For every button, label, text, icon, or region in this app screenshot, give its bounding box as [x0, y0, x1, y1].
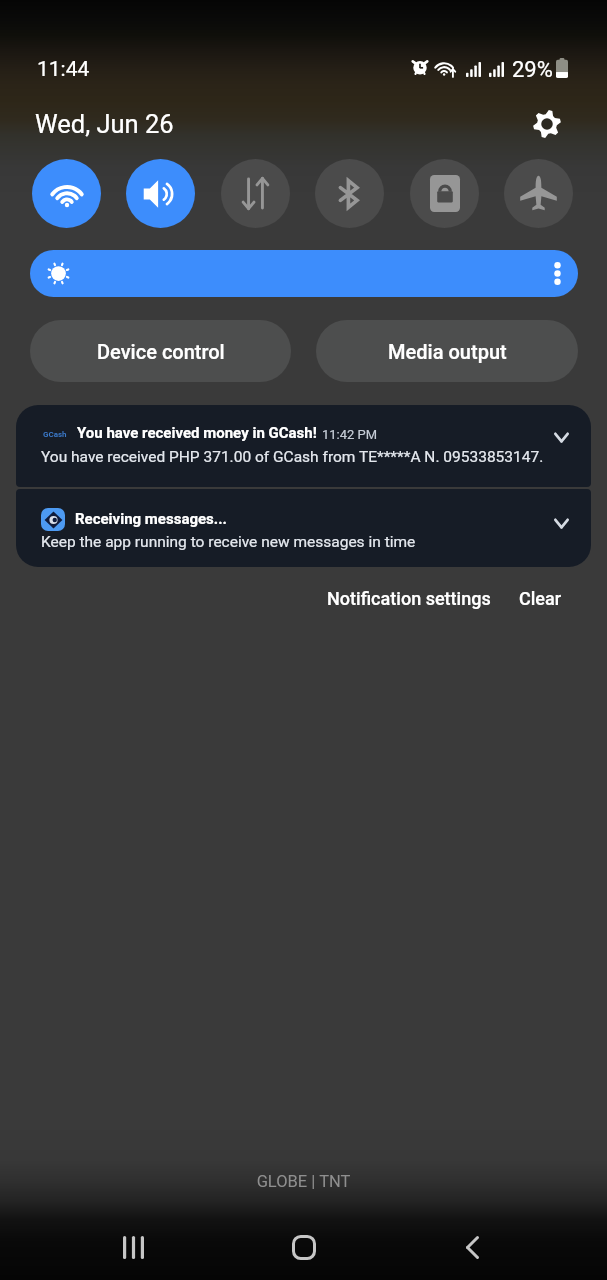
- button[interactable]: Notification settings: [320, 579, 498, 618]
- button[interactable]: Bluetooth: [315, 159, 384, 228]
- button[interactable]: Recent apps: [66, 1216, 201, 1278]
- button[interactable]: Expand notification: [544, 421, 578, 455]
- button[interactable]: Media output: [316, 320, 578, 382]
- button[interactable]: Sound: [126, 159, 195, 228]
- button[interactable]: Home: [236, 1216, 371, 1278]
- staticText: Receiving messages...: [75, 510, 227, 528]
- button[interactable]: Airplane mode: [504, 159, 573, 228]
- staticText: Notification settings: [327, 588, 491, 609]
- staticText: Keep the app running to receive new mess…: [41, 533, 416, 551]
- staticText: You have received PHP 371.00 of GCash fr…: [41, 448, 544, 466]
- button[interactable]: Wi-Fi: [32, 159, 101, 228]
- staticText: You have received money in GCash!: [77, 424, 317, 442]
- staticText: Wed, Jun 26: [35, 109, 174, 139]
- button[interactable]: Settings: [527, 104, 567, 144]
- staticText: GLOBE | TNT: [0, 1172, 607, 1191]
- staticText: Device control: [97, 340, 225, 363]
- staticText: GCash: [43, 430, 67, 439]
- staticText: Clear: [519, 588, 562, 609]
- staticText: Media output: [388, 340, 507, 363]
- button[interactable]: Back: [405, 1216, 540, 1278]
- button[interactable]: Expand notification: [544, 507, 578, 541]
- button[interactable]: Mobile data: [221, 159, 290, 228]
- button[interactable]: Screen lock: [410, 159, 479, 228]
- button[interactable]: Device control: [30, 320, 291, 382]
- staticText: 11:44: [37, 57, 90, 82]
- button[interactable]: Clear: [512, 579, 569, 618]
- staticText: 11:42 PM: [322, 427, 378, 442]
- button[interactable]: Brightness: [30, 250, 578, 297]
- button[interactable]: Receiving messages...: [16, 489, 591, 567]
- staticText: 29%: [512, 57, 553, 83]
- button[interactable]: GCash: [16, 405, 591, 487]
